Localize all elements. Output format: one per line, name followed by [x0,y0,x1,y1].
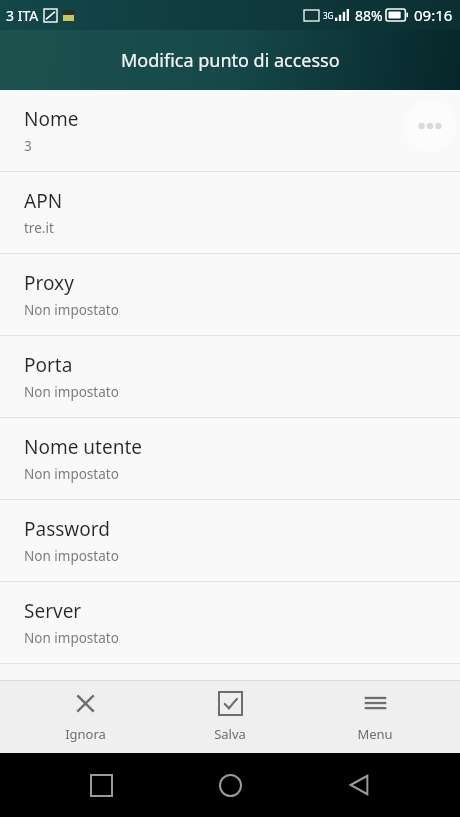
button[interactable]: Porta [0,336,460,418]
staticText: Porta [24,352,73,378]
staticText: Menu [357,725,393,743]
staticText: Non impostato [24,383,119,401]
staticText: 88% [355,6,383,25]
staticText: Server [24,598,82,624]
button[interactable]: Menu [315,692,435,743]
staticText: Nome utente [24,434,142,460]
button[interactable]: Proxy [0,254,460,336]
staticText: Salva [214,725,246,743]
staticText: 3G [323,10,334,21]
staticText: Non impostato [24,629,119,647]
button[interactable]: Salva [170,692,290,743]
staticText: Password [24,516,110,542]
button[interactable]: Nome utente [0,418,460,500]
staticText: Non impostato [24,465,119,483]
staticText: Proxy [24,270,74,296]
button[interactable]: Server [0,582,460,664]
staticText: APN [24,188,63,214]
button[interactable]: APN [0,172,460,254]
button[interactable]: Nome [0,90,460,172]
staticText: 3 [24,137,32,155]
button[interactable]: Home [202,757,258,813]
staticText: Modifica punto di accesso [121,48,340,73]
button[interactable]: Ignora [25,692,145,743]
staticText: tre.it [24,219,54,237]
staticText: Nome [24,106,79,132]
staticText: 09:16 [414,5,453,25]
staticText: Non impostato [24,547,119,565]
staticText: Ignora [65,725,106,743]
button[interactable]: Altre opzioni [404,100,456,152]
staticText: Non impostato [24,301,119,319]
button[interactable]: Indietro [331,757,387,813]
button[interactable]: Password [0,500,460,582]
staticText: 3 ITA [6,6,39,25]
button[interactable]: Recenti [73,757,129,813]
